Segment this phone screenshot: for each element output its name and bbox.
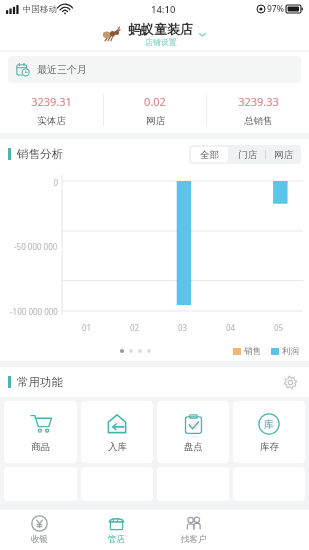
staticText: -100 000 000 bbox=[10, 306, 58, 317]
button[interactable]: 找客户 bbox=[155, 510, 232, 550]
staticText: 商品 bbox=[31, 441, 50, 453]
staticText: 实体店 bbox=[37, 115, 66, 127]
staticText: 网店 bbox=[146, 115, 165, 127]
button[interactable]: 库 bbox=[233, 401, 305, 463]
button[interactable]: 全部 bbox=[191, 147, 228, 162]
button[interactable]: 最近三个月 bbox=[8, 56, 301, 83]
staticText: 管店 bbox=[108, 534, 125, 545]
staticText: 门店 bbox=[238, 149, 257, 161]
staticText: 销售分析 bbox=[17, 147, 63, 161]
button[interactable]: 0.02 bbox=[104, 91, 206, 130]
staticText: -50 000 000 bbox=[14, 241, 58, 252]
staticText: 常用功能 bbox=[17, 375, 63, 389]
button[interactable]: 蚂蚁童装店 bbox=[0, 18, 309, 50]
staticText: 03 bbox=[178, 322, 188, 333]
button[interactable]: 盘点 bbox=[157, 401, 229, 463]
staticText: 库 bbox=[264, 418, 274, 431]
staticText: 04 bbox=[226, 322, 236, 333]
staticText: 找客户 bbox=[181, 534, 207, 545]
button[interactable]: 设置常用功能 bbox=[279, 371, 301, 393]
staticText: 3239.33 bbox=[238, 94, 279, 109]
staticText: 97% bbox=[267, 3, 284, 15]
button[interactable]: 门店 bbox=[230, 145, 265, 164]
staticText: 最近三个月 bbox=[37, 63, 87, 76]
button[interactable]: 网店 bbox=[266, 145, 301, 164]
staticText: 01 bbox=[82, 322, 92, 333]
staticText: 店铺设置 bbox=[145, 37, 177, 47]
staticText: 库存 bbox=[260, 441, 279, 453]
staticText: 0.02 bbox=[144, 94, 166, 109]
staticText: 入库 bbox=[108, 441, 127, 453]
staticText: 收银 bbox=[31, 534, 48, 545]
button[interactable]: 3239.33 bbox=[207, 91, 309, 130]
staticText: 05 bbox=[274, 322, 284, 333]
staticText: 3239.31 bbox=[31, 94, 72, 109]
button[interactable]: 管店 bbox=[78, 510, 155, 550]
button[interactable]: 商品 bbox=[4, 401, 77, 463]
staticText: 蚂蚁童装店 bbox=[128, 21, 193, 37]
staticText: 销售 bbox=[244, 346, 261, 357]
staticText: 总销售 bbox=[244, 115, 273, 127]
staticText: 全部 bbox=[200, 149, 219, 161]
button[interactable]: 3239.31 bbox=[0, 91, 103, 130]
staticText: 中国移动 bbox=[23, 4, 57, 15]
staticText: 利润 bbox=[282, 346, 299, 357]
staticText: 14:10 bbox=[151, 3, 176, 16]
staticText: 02 bbox=[130, 322, 140, 333]
staticText: 0 bbox=[53, 177, 58, 188]
staticText: 盘点 bbox=[184, 441, 203, 453]
button[interactable]: 入库 bbox=[81, 401, 153, 463]
staticText: 网店 bbox=[274, 149, 293, 161]
button[interactable]: 收银 bbox=[0, 510, 78, 550]
